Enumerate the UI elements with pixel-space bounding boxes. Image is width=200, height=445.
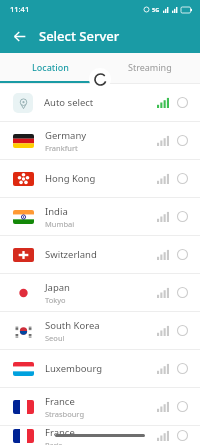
staticText: Auto select: [44, 96, 94, 109]
staticText: Select Server: [39, 27, 120, 45]
staticText: 11:41: [10, 4, 30, 14]
staticText: Hong Kong: [45, 172, 96, 185]
staticText: South Korea: [45, 319, 100, 332]
staticText: Germany: [45, 129, 87, 142]
staticText: France: [45, 395, 75, 408]
staticText: 5G: [152, 6, 160, 13]
button[interactable]: Select France: [176, 429, 189, 442]
staticText: Location: [32, 61, 69, 73]
staticText: Switzerland: [45, 248, 97, 261]
staticText: France: [45, 426, 75, 439]
button[interactable]: Select Switzerland: [176, 248, 189, 261]
staticText: Strasbourg: [45, 409, 84, 419]
staticText: India: [45, 205, 68, 218]
button[interactable]: Select Germany: [176, 134, 189, 147]
staticText: Paris: [45, 440, 63, 445]
button[interactable]: Select India: [176, 210, 189, 223]
button[interactable]: India: [0, 198, 200, 235]
button[interactable]: Back: [6, 23, 32, 49]
button[interactable]: Japan: [0, 274, 200, 311]
button[interactable]: Luxembourg: [0, 350, 200, 387]
button[interactable]: Switzerland: [0, 236, 200, 273]
staticText: Japan: [45, 281, 70, 294]
button[interactable]: France: [0, 426, 200, 445]
button[interactable]: Select Luxembourg: [176, 362, 189, 375]
staticText: Streaming: [128, 61, 172, 73]
button[interactable]: Select Japan: [176, 286, 189, 299]
button[interactable]: Select South Korea: [176, 324, 189, 337]
button[interactable]: France: [0, 388, 200, 425]
other: Refreshing: [89, 68, 111, 90]
button[interactable]: Select Auto select: [176, 96, 189, 109]
button[interactable]: Select France: [176, 400, 189, 413]
button[interactable]: South Korea: [0, 312, 200, 349]
button[interactable]: Streaming: [100, 53, 200, 81]
button[interactable]: Select Hong Kong: [176, 172, 189, 185]
staticText: Frankfurt: [45, 143, 78, 153]
button[interactable]: Hong Kong: [0, 160, 200, 197]
staticText: Seoul: [45, 333, 65, 343]
button[interactable]: Location: [0, 53, 100, 81]
button[interactable]: Auto select: [0, 84, 200, 121]
staticText: Luxembourg: [45, 362, 103, 375]
staticText: Tokyo: [45, 295, 66, 305]
button[interactable]: Germany: [0, 122, 200, 159]
staticText: Mumbai: [45, 219, 75, 229]
